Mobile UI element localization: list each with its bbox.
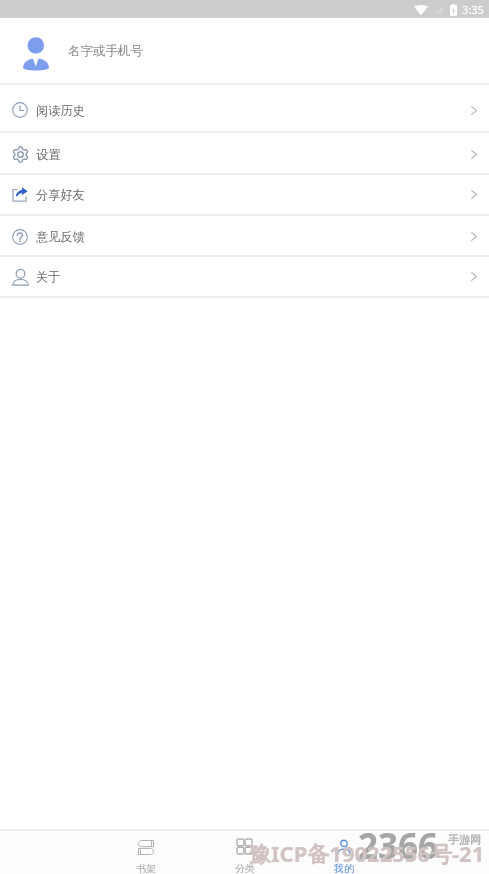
button[interactable]: 意见反馈	[0, 216, 489, 257]
staticText: 关于	[36, 269, 61, 284]
staticText: 书架	[136, 862, 156, 874]
button[interactable]: 名字或手机号	[0, 18, 489, 83]
button[interactable]: 阅读历史	[0, 85, 489, 133]
button[interactable]: 书架	[96, 831, 195, 874]
staticText: 3:35	[462, 2, 484, 17]
button[interactable]: 关于	[0, 257, 489, 298]
staticText: 意见反馈	[36, 229, 85, 244]
button[interactable]: 我的	[294, 831, 393, 874]
staticText: 分类	[235, 862, 255, 874]
button[interactable]: 分类	[195, 831, 294, 874]
button[interactable]: 设置	[0, 133, 489, 175]
staticText: 手游网	[448, 833, 481, 847]
button[interactable]: 分享好友	[0, 175, 489, 216]
staticText: 2366	[358, 822, 439, 870]
staticText: 阅读历史	[36, 103, 85, 118]
staticText: 名字或手机号	[68, 43, 143, 59]
staticText: 我的	[334, 862, 354, 874]
staticText: 分享好友	[36, 187, 85, 202]
staticText: 设置	[36, 147, 61, 162]
staticText: 豫ICP备19022556号-21	[249, 838, 485, 868]
